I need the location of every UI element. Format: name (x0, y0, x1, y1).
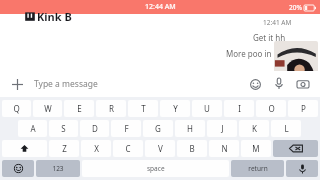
button[interactable]: Camera (294, 75, 312, 93)
button[interactable]: X (81, 140, 111, 157)
button[interactable]: V (145, 140, 175, 157)
staticText: U (204, 103, 210, 114)
staticText: V (158, 143, 163, 154)
staticText: return (248, 164, 268, 173)
button[interactable]: Q (2, 100, 31, 117)
button[interactable]: E (64, 100, 94, 117)
button[interactable]: K (239, 120, 269, 137)
staticText: L (284, 123, 289, 134)
button[interactable]: P (288, 100, 318, 117)
button[interactable]: M (241, 140, 271, 157)
button[interactable]: Type a message (34, 71, 246, 97)
staticText: Get it hh (253, 32, 286, 43)
button[interactable]: Voice message (270, 75, 288, 93)
button[interactable]: Z (49, 140, 79, 157)
staticText: G (155, 123, 161, 134)
staticText: X (94, 143, 99, 154)
button[interactable]: Shift (2, 140, 47, 157)
staticText: 123 (52, 164, 64, 173)
staticText: D (92, 123, 98, 134)
staticText: Type a message (34, 78, 98, 90)
button[interactable]: Y (160, 100, 190, 117)
button[interactable]: D (80, 120, 109, 137)
button[interactable]: Emoji (246, 75, 264, 93)
button[interactable]: T (128, 100, 158, 117)
staticText: E (77, 103, 82, 114)
staticText: 20% (289, 3, 302, 12)
staticText: F (124, 123, 129, 134)
button[interactable]: J (207, 120, 237, 137)
button[interactable]: U (192, 100, 222, 117)
staticText: N (221, 143, 228, 154)
staticText: M (252, 143, 260, 154)
staticText: space (147, 164, 165, 173)
staticText: P (301, 103, 306, 114)
staticText: W (44, 103, 52, 114)
button[interactable]: R (96, 100, 126, 117)
staticText: Z (62, 143, 67, 154)
button[interactable]: B (177, 140, 207, 157)
button[interactable]: I (224, 100, 254, 117)
staticText: More poo in (226, 48, 272, 59)
staticText: Q (13, 103, 20, 114)
staticText: S (61, 123, 66, 134)
staticText: R (109, 103, 114, 114)
button[interactable]: return (231, 160, 284, 177)
button[interactable]: W (33, 100, 62, 117)
staticText: K (252, 123, 257, 134)
button[interactable]: Emoji keyboard (2, 160, 34, 177)
button[interactable]: space (82, 160, 229, 177)
staticText: Kink B (37, 9, 72, 23)
staticText: C (125, 143, 131, 154)
button[interactable]: H (175, 120, 205, 137)
staticText: H (187, 123, 193, 134)
button[interactable]: Voice input (286, 160, 318, 177)
button[interactable]: O (256, 100, 286, 117)
staticText: J (221, 123, 224, 134)
button[interactable]: F (111, 120, 141, 137)
staticText: I (238, 103, 241, 114)
button[interactable]: A (18, 120, 47, 137)
button[interactable]: 123 (36, 160, 80, 177)
staticText: A (30, 123, 36, 134)
staticText: B (189, 143, 195, 154)
button[interactable]: Add attachment (8, 75, 26, 93)
button[interactable]: L (271, 120, 301, 137)
button[interactable]: S (49, 120, 78, 137)
button[interactable]: G (143, 120, 173, 137)
button[interactable]: Backspace (273, 140, 318, 157)
staticText: T (141, 103, 146, 114)
button[interactable]: C (113, 140, 143, 157)
staticText: O (268, 103, 275, 114)
button[interactable]: N (209, 140, 239, 157)
staticText: 12:44 AM (145, 2, 176, 12)
staticText: Y (173, 103, 178, 114)
staticText: 12:41 AM (263, 18, 292, 27)
